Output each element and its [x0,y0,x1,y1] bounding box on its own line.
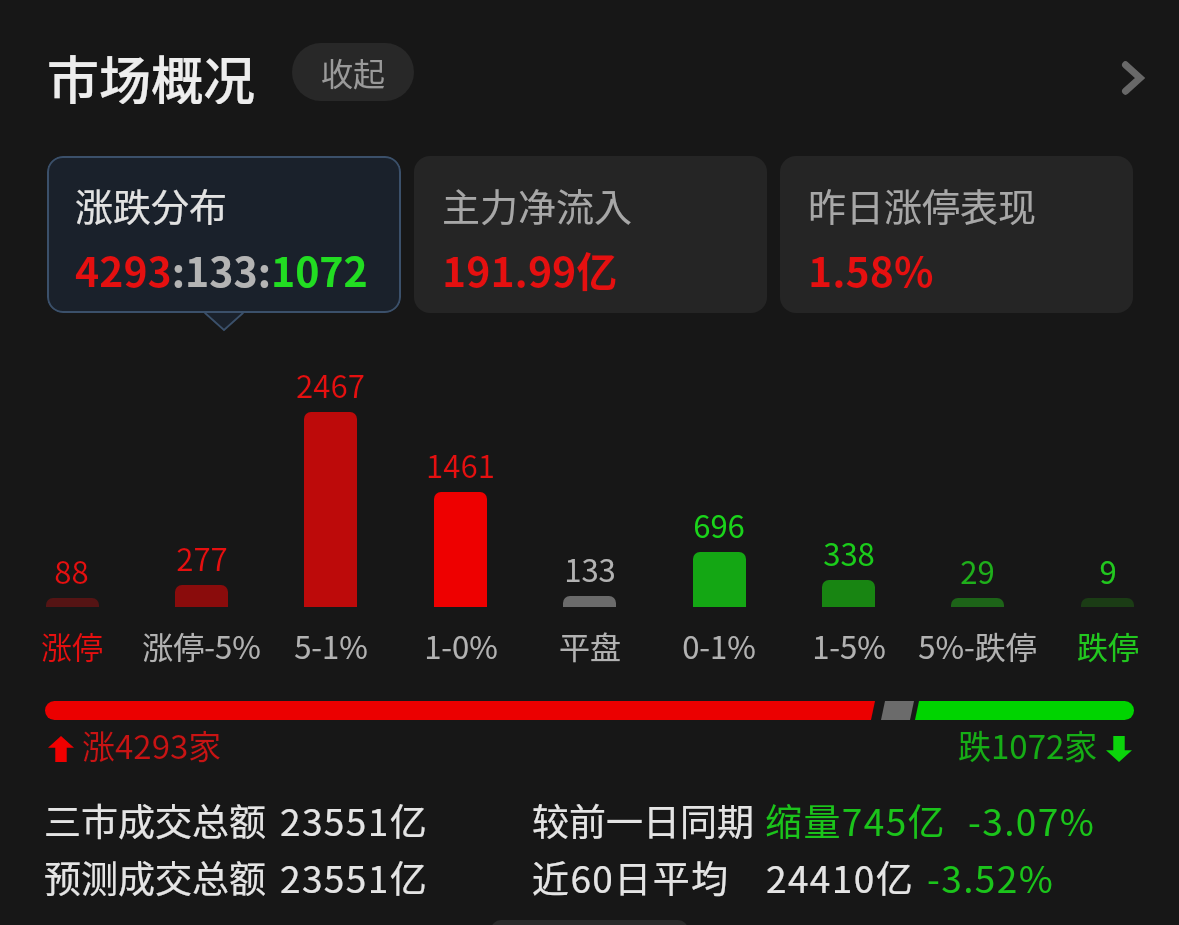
staticText: 三市成交总额 [44,793,266,847]
staticText: 338 [823,530,875,575]
staticText: 预测成交总额 [44,850,266,904]
staticText: 近60日平均 [532,850,730,904]
staticText: 较前一日同期 [532,793,754,847]
staticText: 88 [54,548,89,593]
staticText: -3.07% [968,793,1096,847]
staticText: 133 [564,546,616,591]
button[interactable]: 主力净流入 [414,156,767,313]
staticText: 1461 [426,442,495,487]
staticText: 1-0% [424,623,498,668]
staticText: 0-1% [682,623,756,668]
staticText: 跌停 [1077,623,1139,668]
staticText: 2467 [296,362,365,407]
staticText: 696 [693,502,745,547]
staticText: 主力净流入 [442,177,633,232]
staticText: 277 [176,535,228,580]
staticText: 跌1072家 [958,721,1098,769]
button[interactable]: 收起 [292,43,414,101]
staticText: 4293:133:1072 [75,239,368,298]
staticText: 23551亿 [280,850,429,904]
staticText: 24410亿 [766,850,915,904]
staticText: 9 [1099,548,1117,593]
staticText: 1-5% [812,623,886,668]
staticText: 5-1% [294,623,368,668]
staticText: -3.52% [927,850,1055,904]
button[interactable]: 昨日涨停表现 [780,156,1133,313]
staticText: 29 [960,548,995,593]
staticText: 涨4293家 [82,721,222,769]
staticText: 23551亿 [280,793,429,847]
staticText: 昨日涨停表现 [808,177,1037,232]
staticText: 5%-跌停 [918,623,1037,668]
staticText: 涨跌分布 [75,177,228,232]
staticText: 1.58% [808,239,934,298]
button[interactable]: 展开更多 [1103,48,1163,108]
staticText: 收起 [321,49,386,95]
staticText: 涨停 [41,623,103,668]
button[interactable]: 涨跌分布 [47,156,401,313]
staticText: 平盘 [559,623,621,668]
staticText: 涨停-5% [142,623,261,668]
staticText: 市场概况 [47,40,256,104]
staticText: 191.99亿 [442,239,618,298]
staticText: 缩量745亿 [765,793,947,847]
